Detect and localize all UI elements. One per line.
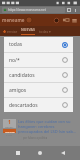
staticText: descartados [9,102,38,109]
staticText: meneame [2,17,25,23]
staticText: 1 [8,119,11,126]
button[interactable]: More options [73,8,78,13]
button[interactable]: enviar [2,29,18,34]
staticText: NUEVAS [21,27,35,32]
button[interactable]: amigos [4,83,73,97]
staticText: Las élites que cuidan con su hangover: c… [18,119,77,134]
button[interactable]: 1 [0,117,80,144]
button[interactable]: Address bar [2,7,65,13]
button[interactable]: Tabs [66,7,72,13]
button[interactable]: menéalo [3,129,16,133]
staticText: candidatos [9,72,35,79]
button[interactable]: no/* [4,53,73,67]
button[interactable]: meneame [2,17,32,23]
staticText: enviar [7,29,18,34]
button[interactable]: Account [62,16,70,24]
button[interactable]: Recent apps [13,148,23,158]
staticText: menéalo [5,130,15,133]
staticText: https://www.meneame.net [8,8,46,12]
button[interactable]: Back [58,148,68,158]
staticText: meneos [5,126,14,128]
staticText: no/* [9,57,20,64]
button[interactable]: todas [4,37,73,52]
button[interactable]: Notifications [53,17,60,24]
button[interactable]: Home [35,148,45,158]
button[interactable]: descartados [4,98,73,112]
staticText: todas [9,41,23,48]
button[interactable]: todas ▾ [39,29,51,34]
button[interactable]: candidatos [4,68,73,82]
staticText: por fulano a politica [23,136,48,140]
staticText: amigos [9,87,27,94]
button[interactable]: NUEVAS [21,27,35,35]
button[interactable]: Menu [71,17,78,24]
